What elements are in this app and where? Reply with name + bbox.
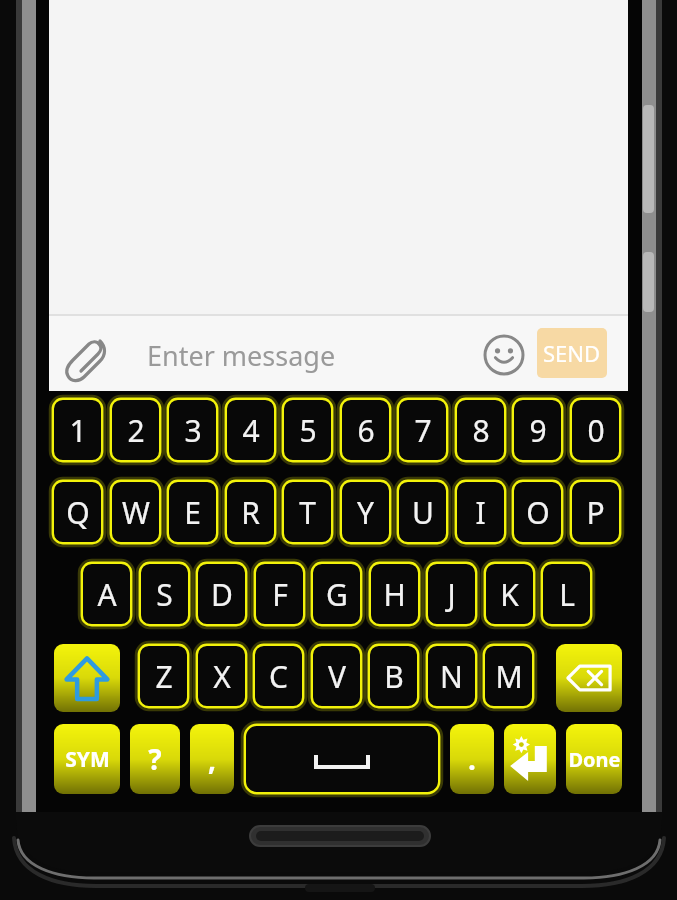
button[interactable]: W <box>109 479 162 545</box>
button[interactable]: I <box>454 479 507 545</box>
button[interactable]: . <box>449 723 495 795</box>
button[interactable]: Backspace <box>555 643 623 713</box>
button[interactable]: 4 <box>224 397 277 463</box>
staticText: 8 <box>472 410 490 451</box>
button[interactable]: M <box>482 643 535 709</box>
staticText: Done <box>568 746 621 773</box>
staticText: F <box>272 574 288 615</box>
staticText: R <box>241 492 260 533</box>
button[interactable]: 3 <box>166 397 219 463</box>
button[interactable]: C <box>252 643 305 709</box>
staticText: 1 <box>69 410 87 451</box>
staticText: . <box>468 740 476 778</box>
button[interactable]: R <box>224 479 277 545</box>
button[interactable]: 9 <box>511 397 564 463</box>
button[interactable]: 5 <box>281 397 334 463</box>
button[interactable]: U <box>396 479 449 545</box>
staticText: G <box>326 574 348 615</box>
button[interactable]: L <box>540 561 593 627</box>
button[interactable]: T <box>281 479 334 545</box>
staticText: 0 <box>587 410 605 451</box>
staticText: J <box>447 574 456 615</box>
staticText: 4 <box>242 410 260 451</box>
button[interactable]: Done <box>565 723 623 795</box>
button[interactable]: 8 <box>454 397 507 463</box>
staticText: 9 <box>529 410 547 451</box>
staticText: K <box>500 574 519 615</box>
button[interactable]: Space <box>243 723 441 795</box>
button[interactable]: J <box>425 561 478 627</box>
staticText: 7 <box>414 410 432 451</box>
staticText: S <box>156 574 173 615</box>
button[interactable]: V <box>310 643 363 709</box>
staticText: V <box>328 656 346 697</box>
staticText: W <box>122 492 150 533</box>
staticText: 5 <box>299 410 317 451</box>
staticText: D <box>211 574 233 615</box>
button[interactable]: Y <box>339 479 392 545</box>
button[interactable]: 2 <box>109 397 162 463</box>
button[interactable]: H <box>368 561 421 627</box>
button[interactable]: SYM <box>53 723 121 795</box>
staticText: P <box>586 492 605 533</box>
button[interactable]: Shift <box>53 643 121 713</box>
staticText: SEND <box>543 338 601 368</box>
button[interactable]: Z <box>137 643 190 709</box>
button[interactable]: ? <box>129 723 181 795</box>
staticText: 3 <box>184 410 202 451</box>
staticText: U <box>412 492 434 533</box>
staticText: A <box>97 574 117 615</box>
button[interactable]: K <box>483 561 536 627</box>
staticText: Y <box>357 492 374 533</box>
staticText: E <box>184 492 201 533</box>
staticText: 6 <box>357 410 375 451</box>
button[interactable]: Emoji <box>481 332 527 378</box>
button[interactable]: N <box>425 643 478 709</box>
button[interactable]: 0 <box>569 397 622 463</box>
button[interactable]: Attach file <box>67 330 117 380</box>
button[interactable]: 7 <box>396 397 449 463</box>
staticText: Enter message <box>147 337 336 374</box>
button[interactable]: A <box>80 561 133 627</box>
button[interactable]: B <box>367 643 420 709</box>
staticText: N <box>440 656 463 697</box>
button[interactable]: Q <box>51 479 104 545</box>
button[interactable]: , <box>189 723 235 795</box>
button[interactable]: S <box>138 561 191 627</box>
button[interactable]: D <box>195 561 248 627</box>
button[interactable]: O <box>511 479 564 545</box>
button[interactable]: F <box>253 561 306 627</box>
staticText: C <box>269 656 288 697</box>
button[interactable]: SEND <box>537 328 607 378</box>
staticText: T <box>299 492 316 533</box>
button[interactable]: Enter <box>503 723 557 795</box>
staticText: ? <box>148 740 162 778</box>
button[interactable]: 6 <box>339 397 392 463</box>
staticText: O <box>526 492 550 533</box>
staticText: L <box>559 574 575 615</box>
staticText: M <box>495 656 523 697</box>
staticText: 2 <box>127 410 145 451</box>
button[interactable]: X <box>195 643 248 709</box>
button[interactable]: G <box>310 561 363 627</box>
staticText: B <box>384 656 404 697</box>
staticText: SYM <box>65 745 110 774</box>
staticText: X <box>213 656 231 697</box>
button[interactable]: P <box>569 479 622 545</box>
staticText: , <box>208 740 216 778</box>
staticText: I <box>475 492 486 533</box>
button[interactable]: E <box>166 479 219 545</box>
staticText: Q <box>66 492 90 533</box>
button[interactable]: 1 <box>51 397 104 463</box>
staticText: Z <box>155 656 173 697</box>
staticText: H <box>383 574 406 615</box>
